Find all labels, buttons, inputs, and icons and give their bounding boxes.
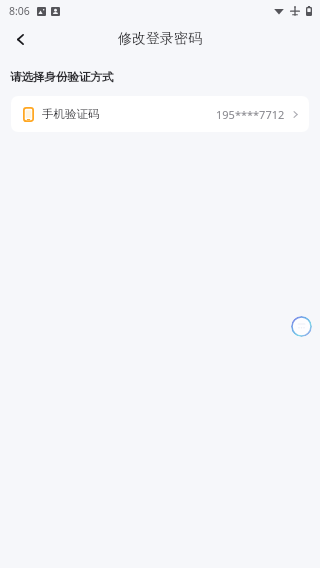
staticText: 手机验证码	[42, 107, 100, 121]
button[interactable]: 手机验证码	[11, 96, 309, 132]
staticText: 8:06	[9, 4, 30, 18]
staticText: 请选择身份验证方式	[10, 70, 114, 84]
staticText: 修改登录密码	[118, 30, 202, 48]
button[interactable]: Assistant	[291, 316, 312, 337]
button[interactable]: Back	[0, 22, 40, 56]
staticText: 195****7712	[216, 107, 285, 122]
